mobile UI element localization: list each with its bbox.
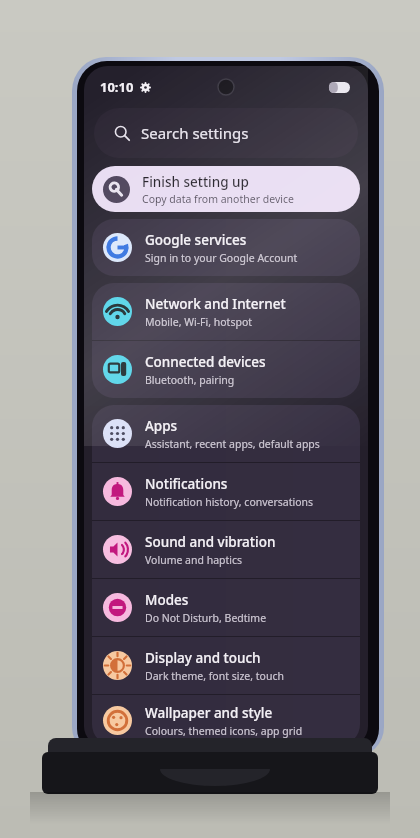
staticText: Connected devices	[145, 353, 266, 371]
staticText: Bluetooth, pairing	[145, 373, 235, 387]
button[interactable]: Display and touch	[92, 637, 360, 694]
staticText: Notification history, conversations	[145, 495, 314, 509]
button[interactable]: Finish setting up	[92, 166, 360, 212]
staticText: Do Not Disturb, Bedtime	[145, 611, 267, 625]
staticText: Finish setting up	[142, 173, 249, 191]
button[interactable]: Notifications	[92, 463, 360, 520]
staticText: Google services	[145, 231, 247, 249]
button[interactable]: Search settings	[94, 108, 358, 158]
button[interactable]: Wallpaper and style	[92, 695, 360, 746]
staticText: Copy data from another device	[142, 192, 294, 206]
button[interactable]: Network and Internet	[92, 283, 360, 340]
staticText: Display and touch	[145, 649, 261, 667]
button[interactable]: Modes	[92, 579, 360, 636]
staticText: Search settings	[141, 123, 249, 143]
staticText: Sound and vibration	[145, 533, 276, 551]
staticText: Network and Internet	[145, 295, 286, 313]
staticText: Dark theme, font size, touch	[145, 669, 284, 683]
button[interactable]: Sound and vibration	[92, 521, 360, 578]
staticText: Mobile, Wi-Fi, hotspot	[145, 315, 253, 329]
staticText: Volume and haptics	[145, 553, 243, 567]
staticText: Wallpaper and style	[145, 704, 273, 722]
staticText: Colours, themed icons, app grid	[145, 724, 303, 738]
button[interactable]: Connected devices	[92, 341, 360, 398]
button[interactable]: Apps	[92, 405, 360, 462]
staticText: Apps	[145, 417, 178, 435]
staticText: Assistant, recent apps, default apps	[145, 437, 320, 451]
staticText: Modes	[145, 591, 189, 609]
staticText: 10:10	[100, 78, 134, 96]
button[interactable]: Google services	[92, 219, 360, 276]
staticText: Notifications	[145, 475, 228, 493]
staticText: Sign in to your Google Account	[145, 251, 298, 265]
